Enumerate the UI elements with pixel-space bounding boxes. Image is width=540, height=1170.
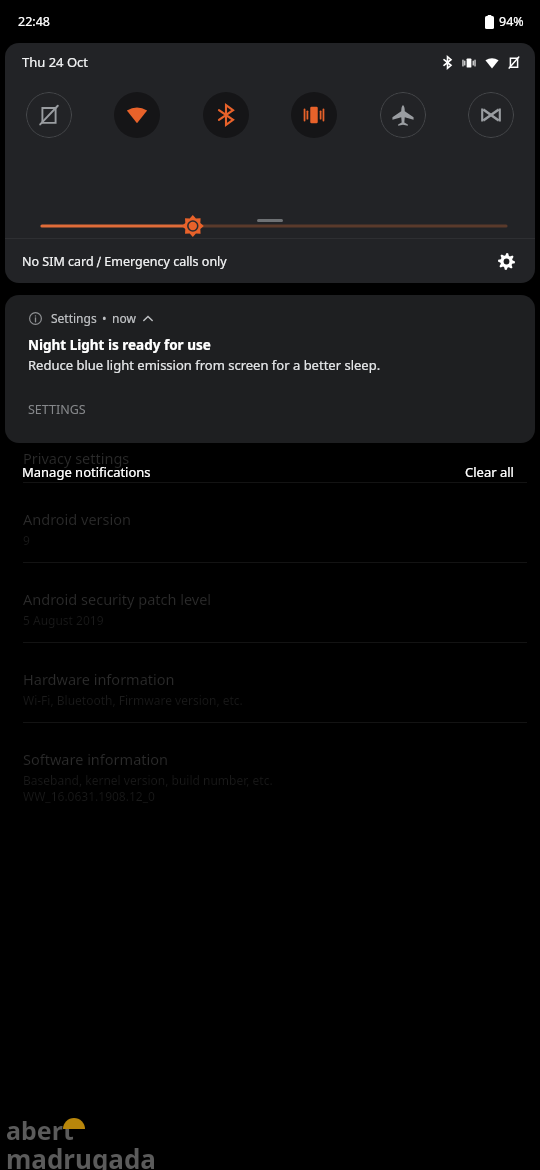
button[interactable]: Android security patch level bbox=[0, 563, 540, 642]
staticText: Clear all bbox=[465, 463, 514, 481]
staticText: Baseband, kernel version, build number, … bbox=[23, 772, 273, 788]
button[interactable]: Vibrate bbox=[291, 92, 337, 138]
button[interactable]: Settings bbox=[5, 295, 535, 443]
staticText: WW_16.0631.1908.12_0 bbox=[23, 788, 155, 804]
staticText: now bbox=[112, 310, 136, 326]
button[interactable]: Mobile data bbox=[26, 92, 72, 138]
button[interactable]: Software information bbox=[0, 723, 540, 818]
staticText: 22:48 bbox=[18, 13, 50, 30]
staticText: 9 bbox=[23, 532, 30, 548]
staticText: Android version bbox=[23, 509, 131, 529]
staticText: Reduce blue light emission from screen f… bbox=[28, 356, 381, 374]
staticText: Android security patch level bbox=[23, 589, 212, 609]
button[interactable]: Manage notifications bbox=[0, 456, 159, 487]
staticText: Thu 24 Oct bbox=[22, 53, 89, 71]
staticText: SETTINGS bbox=[28, 401, 86, 418]
staticText: • bbox=[102, 310, 107, 326]
button[interactable]: Settings bbox=[491, 246, 521, 276]
button[interactable]: No SIM card ∕ Emergency calls only bbox=[5, 239, 535, 283]
staticText: Manage notifications bbox=[22, 463, 151, 481]
staticText: Wi-Fi, Bluetooth, Firmware version, etc. bbox=[23, 692, 243, 708]
staticText: Privacy settings bbox=[23, 448, 130, 468]
staticText: abert bbox=[6, 1113, 74, 1147]
staticText: 94% bbox=[499, 13, 524, 30]
button[interactable]: Hardware information bbox=[0, 643, 540, 722]
button[interactable] bbox=[5, 211, 535, 241]
button[interactable]: Clear all bbox=[457, 456, 540, 487]
button[interactable]: Airplane mode bbox=[380, 92, 426, 138]
staticText: No SIM card ∕ Emergency calls only bbox=[22, 253, 227, 270]
staticText: Software information bbox=[23, 749, 168, 769]
staticText: Night Light is ready for use bbox=[28, 336, 211, 354]
staticText: Hardware information bbox=[23, 669, 175, 689]
button[interactable]: Bluetooth bbox=[203, 92, 249, 138]
button[interactable]: SETTINGS bbox=[15, 392, 99, 426]
staticText: Settings bbox=[51, 310, 97, 326]
staticText: madrugada bbox=[6, 1141, 156, 1170]
button[interactable]: Wi-Fi bbox=[114, 92, 160, 138]
button[interactable]: Mobile Manager bbox=[468, 92, 514, 138]
staticText: 5 August 2019 bbox=[23, 612, 104, 628]
button[interactable]: Privacy settings bbox=[0, 448, 540, 482]
